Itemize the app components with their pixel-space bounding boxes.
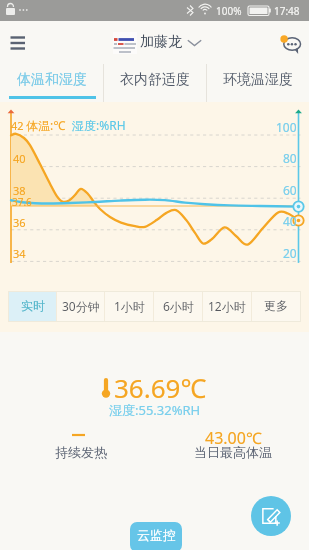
button[interactable]: 30分钟 [57, 292, 104, 321]
staticText: 37.6 [12, 195, 32, 209]
button[interactable]: 云监控 [130, 522, 182, 550]
staticText: 湿度:55.32%RH [109, 401, 201, 419]
staticText: 60 [283, 182, 297, 198]
staticText: 40 [13, 151, 26, 166]
button[interactable]: 1小时 [105, 292, 153, 321]
staticText: 体温:℃ [26, 117, 66, 133]
staticText: 100 [276, 119, 297, 135]
button[interactable]: Messages [275, 28, 305, 58]
staticText: 实时 [21, 298, 45, 313]
staticText: 当日最高体温 [194, 444, 272, 460]
button[interactable]: 体温和湿度 [0, 64, 103, 102]
staticText: 36.69℃ [114, 370, 207, 405]
staticText: 38 [13, 183, 26, 198]
staticText: 43.00℃ [205, 427, 262, 449]
staticText: 持续发热 [55, 444, 107, 460]
button[interactable]: 实时 [9, 292, 56, 321]
staticText: 42 [11, 118, 24, 133]
staticText: 6小时 [163, 298, 194, 314]
staticText: 20 [283, 245, 297, 261]
button[interactable]: 环境温湿度 [207, 64, 309, 102]
staticText: 更多 [264, 298, 288, 313]
staticText: 17:48 [274, 4, 300, 18]
staticText: 80 [283, 150, 297, 166]
staticText: 40 [283, 213, 297, 229]
staticText: 12小时 [208, 298, 246, 314]
button[interactable]: Menu [4, 29, 32, 57]
staticText: 环境温湿度 [223, 71, 293, 89]
staticText: 34 [13, 246, 26, 261]
button[interactable]: New record [251, 496, 291, 536]
button[interactable]: 加藤龙 [113, 32, 202, 54]
button[interactable]: 衣内舒适度 [104, 64, 206, 102]
staticText: 100% [216, 4, 242, 18]
staticText: 30分钟 [62, 298, 100, 314]
staticText: 云监控 [137, 527, 176, 543]
staticText: 加藤龙 [140, 33, 182, 51]
button[interactable]: 更多 [252, 292, 300, 321]
button[interactable]: 12小时 [203, 292, 251, 321]
staticText: 体温和湿度 [17, 71, 87, 89]
staticText: 衣内舒适度 [120, 71, 190, 89]
staticText: 1小时 [114, 298, 145, 314]
button[interactable]: 6小时 [154, 292, 202, 321]
staticText: 湿度:%RH [72, 117, 126, 133]
staticText: 36 [13, 215, 26, 230]
